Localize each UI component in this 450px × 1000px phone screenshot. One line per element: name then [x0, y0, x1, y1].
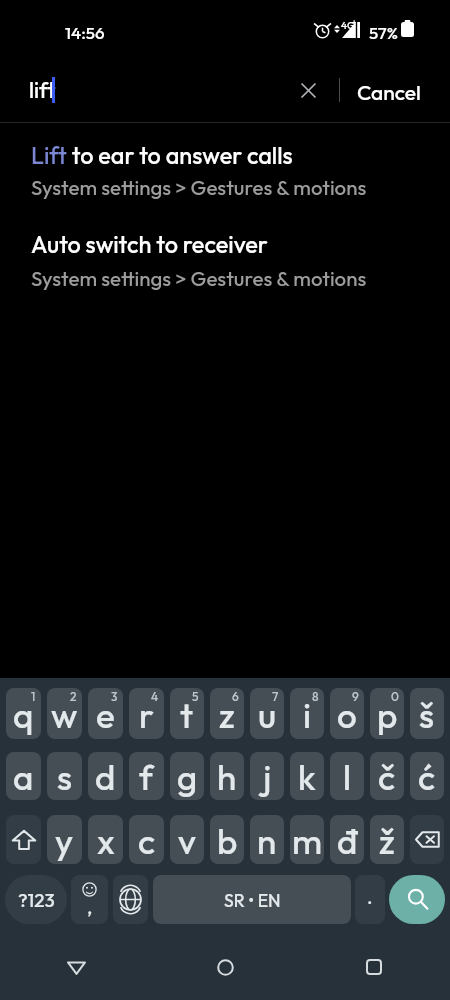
- staticText: c: [138, 819, 156, 863]
- button[interactable]: SR • EN: [153, 875, 351, 924]
- button[interactable]: w: [47, 688, 82, 739]
- staticText: 4: [151, 689, 159, 704]
- button[interactable]: Emoji: [71, 875, 108, 924]
- staticText: 7: [272, 689, 279, 704]
- button[interactable]: đ: [330, 815, 364, 864]
- staticText: ?123: [18, 888, 55, 912]
- button[interactable]: f: [129, 752, 164, 800]
- button[interactable]: m: [290, 815, 324, 864]
- staticText: o: [337, 693, 357, 737]
- button[interactable]: ć: [410, 752, 444, 800]
- staticText: 6: [232, 689, 239, 704]
- button[interactable]: c: [129, 815, 164, 864]
- button[interactable]: o: [330, 688, 364, 739]
- staticText: w: [51, 693, 78, 737]
- staticText: 0: [391, 689, 399, 704]
- button[interactable]: Cancel: [346, 68, 432, 116]
- staticText: 1: [31, 689, 36, 704]
- button[interactable]: Back: [52, 943, 100, 991]
- staticText: System settings > Gestures & motions: [31, 265, 367, 291]
- staticText: Cancel: [357, 79, 421, 105]
- staticText: ,: [87, 895, 93, 919]
- button[interactable]: ž: [370, 815, 404, 864]
- button[interactable]: .: [355, 875, 385, 924]
- button[interactable]: y: [47, 815, 82, 864]
- staticText: lift: [29, 76, 56, 104]
- staticText: x: [97, 819, 115, 863]
- staticText: 4G: [341, 19, 355, 32]
- button[interactable]: Recent apps: [350, 943, 398, 991]
- staticText: č: [378, 755, 396, 799]
- button[interactable]: z: [210, 688, 244, 739]
- button[interactable]: p: [370, 688, 404, 739]
- staticText: f: [139, 755, 154, 799]
- button[interactable]: a: [6, 752, 41, 800]
- staticText: j: [263, 755, 272, 799]
- button[interactable]: š: [410, 688, 444, 739]
- button[interactable]: b: [210, 815, 244, 864]
- staticText: m: [292, 819, 323, 863]
- staticText: p: [377, 693, 398, 737]
- staticText: đ: [337, 819, 358, 863]
- button[interactable]: g: [170, 752, 204, 800]
- staticText: Lift: [31, 140, 67, 170]
- staticText: z: [219, 693, 235, 737]
- staticText: s: [57, 755, 73, 799]
- button[interactable]: n: [250, 815, 284, 864]
- staticText: 8: [312, 689, 319, 704]
- staticText: d: [95, 755, 116, 799]
- button[interactable]: Shift: [6, 815, 41, 864]
- staticText: q: [13, 693, 34, 737]
- staticText: 57%: [369, 22, 398, 43]
- button[interactable]: k: [290, 752, 324, 800]
- staticText: 3: [111, 689, 118, 704]
- staticText: b: [217, 819, 238, 863]
- staticText: g: [177, 755, 198, 799]
- staticText: SR • EN: [224, 889, 281, 911]
- staticText: i: [303, 693, 312, 737]
- button[interactable]: Clear text: [287, 69, 329, 111]
- button[interactable]: j: [250, 752, 284, 800]
- button[interactable]: Home: [201, 943, 249, 991]
- button[interactable]: u: [250, 688, 284, 739]
- button[interactable]: Change keyboard language: [113, 875, 148, 924]
- staticText: n: [257, 819, 277, 863]
- button[interactable]: Search: [389, 875, 445, 924]
- staticText: y: [55, 819, 74, 863]
- button[interactable]: Lift: [0, 130, 450, 204]
- button[interactable]: č: [370, 752, 404, 800]
- button[interactable]: ?123: [5, 875, 67, 924]
- staticText: e: [96, 693, 115, 737]
- staticText: to ear to answer calls: [67, 140, 293, 170]
- staticText: ž: [379, 819, 395, 863]
- staticText: h: [217, 755, 237, 799]
- staticText: k: [298, 755, 316, 799]
- staticText: š: [419, 693, 435, 737]
- staticText: Auto switch to receiver: [31, 229, 268, 259]
- button[interactable]: r: [129, 688, 164, 739]
- button[interactable]: i: [290, 688, 324, 739]
- staticText: u: [258, 693, 277, 737]
- staticText: v: [178, 819, 196, 863]
- button[interactable]: d: [88, 752, 123, 800]
- button[interactable]: q: [6, 688, 41, 739]
- staticText: l: [343, 755, 351, 799]
- button[interactable]: e: [88, 688, 123, 739]
- staticText: 9: [352, 689, 359, 704]
- staticText: 2: [70, 689, 77, 704]
- button[interactable]: t: [170, 688, 204, 739]
- staticText: +: [352, 17, 357, 27]
- button[interactable]: h: [210, 752, 244, 800]
- button[interactable]: Auto switch to receiver: [0, 219, 450, 293]
- staticText: r: [139, 693, 154, 737]
- staticText: ć: [418, 755, 436, 799]
- button[interactable]: l: [330, 752, 364, 800]
- staticText: .: [367, 885, 373, 909]
- button[interactable]: Backspace: [410, 815, 444, 864]
- staticText: 14:56: [65, 22, 105, 43]
- staticText: System settings > Gestures & motions: [31, 174, 367, 200]
- button[interactable]: x: [88, 815, 123, 864]
- button[interactable]: v: [170, 815, 204, 864]
- staticText: t: [180, 693, 194, 737]
- button[interactable]: s: [47, 752, 82, 800]
